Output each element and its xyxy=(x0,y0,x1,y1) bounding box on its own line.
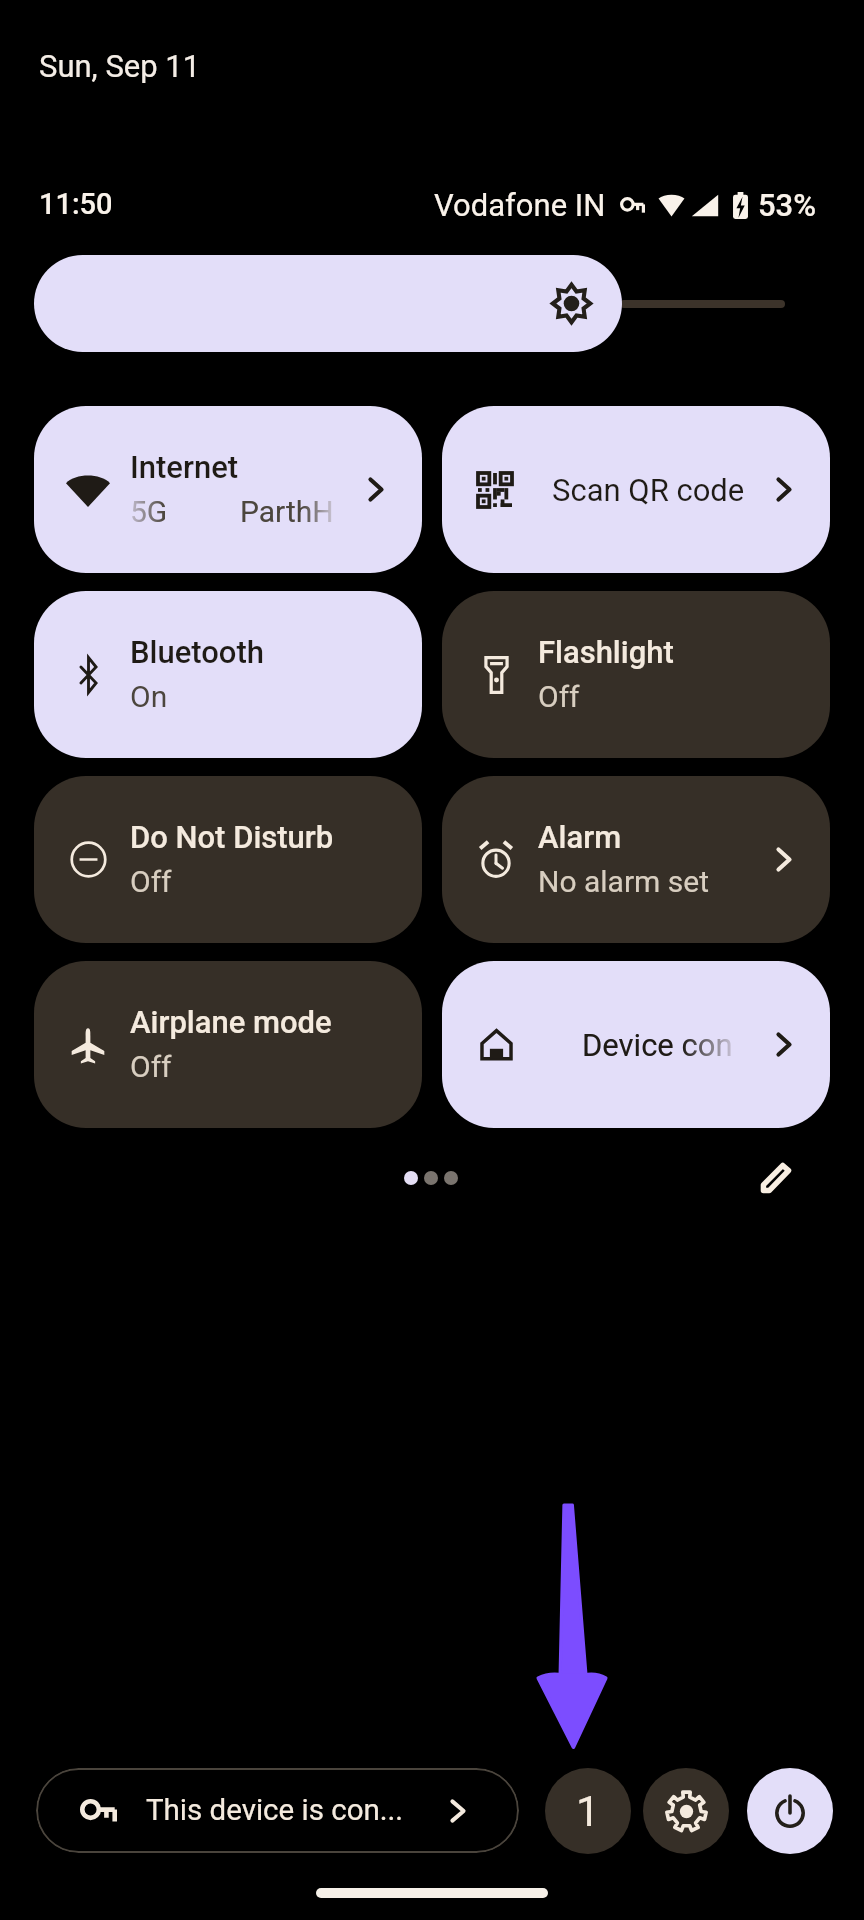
staticText: ParthH xyxy=(240,494,334,529)
staticText: 11:50 xyxy=(39,187,113,221)
button[interactable]: This device is con... xyxy=(36,1768,519,1853)
staticText: On xyxy=(130,679,168,714)
staticText: Internet xyxy=(130,449,239,485)
staticText: 5G xyxy=(130,494,168,529)
button[interactable]: Alarm xyxy=(442,776,830,943)
staticText: Off xyxy=(130,864,172,899)
button[interactable]: Device con xyxy=(442,961,830,1128)
button[interactable]: Airplane mode xyxy=(34,961,422,1128)
staticText: Do Not Disturb xyxy=(130,819,334,855)
button[interactable]: Scan QR code xyxy=(442,406,830,573)
staticText: Off xyxy=(130,1049,172,1084)
staticText: Off xyxy=(538,679,580,714)
staticText: Sun, Sep 11 xyxy=(39,48,201,84)
staticText: Device con xyxy=(582,1027,733,1063)
button[interactable]: Brightness xyxy=(34,255,622,352)
staticText: 1 xyxy=(576,1787,600,1836)
button[interactable]: Do Not Disturb xyxy=(34,776,422,943)
button[interactable]: Edit tiles xyxy=(744,1146,808,1210)
button[interactable]: Settings xyxy=(643,1768,729,1854)
staticText: 53% xyxy=(758,187,817,223)
staticText: No alarm set xyxy=(538,864,710,899)
staticText: Bluetooth xyxy=(130,634,265,670)
staticText: Airplane mode xyxy=(130,1004,332,1040)
staticText: Flashlight xyxy=(538,634,674,670)
button[interactable]: Internet xyxy=(34,406,422,573)
button[interactable]: Flashlight xyxy=(442,591,830,758)
button[interactable]: 1 xyxy=(545,1768,631,1854)
staticText: Scan QR code xyxy=(552,472,745,508)
staticText: Alarm xyxy=(538,819,622,855)
button[interactable]: Bluetooth xyxy=(34,591,422,758)
staticText: This device is con... xyxy=(146,1793,404,1828)
button[interactable]: Power xyxy=(747,1768,833,1854)
staticText: Vodafone IN xyxy=(434,187,606,223)
